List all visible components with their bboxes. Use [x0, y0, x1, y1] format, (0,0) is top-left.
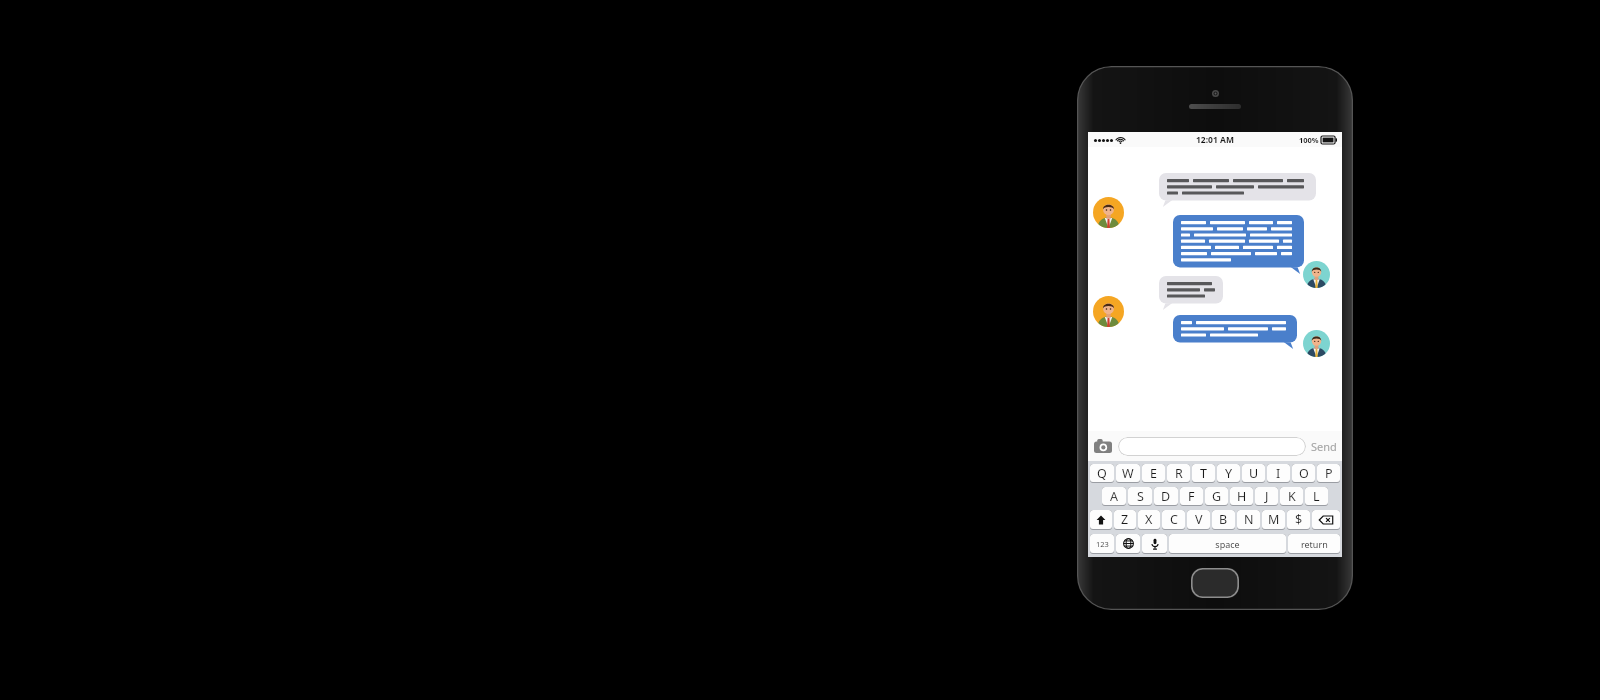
- button[interactable]: Backspace: [1312, 510, 1340, 529]
- button[interactable]: K: [1280, 487, 1303, 505]
- button[interactable]: Change language: [1116, 534, 1140, 553]
- staticText: $: [1295, 511, 1303, 528]
- button[interactable]: $: [1287, 510, 1310, 529]
- staticText: L: [1313, 488, 1320, 505]
- staticText: K: [1288, 488, 1296, 505]
- button[interactable]: A: [1102, 487, 1126, 505]
- button[interactable]: H: [1230, 487, 1253, 505]
- button[interactable]: T: [1192, 464, 1215, 482]
- button[interactable]: 123: [1090, 534, 1114, 553]
- button[interactable]: R: [1167, 464, 1190, 482]
- staticText: I: [1276, 465, 1281, 482]
- button[interactable]: L: [1305, 487, 1328, 505]
- staticText: J: [1265, 488, 1269, 505]
- button[interactable]: P: [1317, 464, 1340, 482]
- staticText: X: [1145, 511, 1153, 528]
- staticText: Y: [1225, 465, 1233, 482]
- staticText: O: [1299, 465, 1309, 482]
- button[interactable]: W: [1116, 464, 1140, 482]
- button[interactable]: Contact avatar: [1093, 197, 1124, 228]
- button[interactable]: M: [1262, 510, 1285, 529]
- button[interactable]: E: [1142, 464, 1165, 482]
- button[interactable]: D: [1154, 487, 1178, 505]
- staticText: E: [1150, 465, 1157, 482]
- staticText: R: [1175, 465, 1183, 482]
- button[interactable]: Home: [1191, 568, 1239, 598]
- staticText: S: [1137, 488, 1144, 505]
- staticText: 12:01 AM: [1196, 134, 1234, 146]
- button[interactable]: B: [1212, 510, 1235, 529]
- staticText: V: [1195, 511, 1203, 528]
- staticText: D: [1161, 488, 1171, 505]
- staticText: space: [1215, 538, 1240, 550]
- button[interactable]: Send: [1311, 439, 1337, 454]
- button[interactable]: Voice input: [1142, 534, 1167, 553]
- staticText: return: [1301, 538, 1328, 550]
- staticText: P: [1325, 465, 1333, 482]
- button[interactable]: [1118, 437, 1306, 456]
- button[interactable]: J: [1255, 487, 1278, 505]
- button[interactable]: O: [1292, 464, 1315, 482]
- staticText: W: [1122, 465, 1134, 482]
- button[interactable]: G: [1205, 487, 1228, 505]
- button[interactable]: Shift: [1090, 510, 1112, 529]
- button[interactable]: Contact avatar: [1303, 330, 1330, 357]
- staticText: U: [1249, 465, 1259, 482]
- staticText: A: [1110, 488, 1118, 505]
- button[interactable]: N: [1237, 510, 1260, 529]
- button[interactable]: C: [1162, 510, 1185, 529]
- staticText: F: [1188, 488, 1195, 505]
- button[interactable]: Y: [1217, 464, 1240, 482]
- button[interactable]: X: [1138, 510, 1160, 529]
- button[interactable]: Z: [1114, 510, 1136, 529]
- staticText: Z: [1121, 511, 1129, 528]
- staticText: B: [1219, 511, 1228, 528]
- button[interactable]: V: [1187, 510, 1210, 529]
- staticText: T: [1200, 465, 1207, 482]
- button[interactable]: F: [1180, 487, 1203, 505]
- staticText: C: [1170, 511, 1178, 528]
- button[interactable]: Contact avatar: [1303, 261, 1330, 288]
- button[interactable]: Camera: [1093, 437, 1113, 455]
- staticText: N: [1244, 511, 1254, 528]
- button[interactable]: Contact avatar: [1093, 296, 1124, 327]
- button[interactable]: I: [1267, 464, 1290, 482]
- staticText: Q: [1097, 465, 1107, 482]
- button[interactable]: Q: [1090, 464, 1114, 482]
- button[interactable]: U: [1242, 464, 1265, 482]
- staticText: M: [1268, 511, 1280, 528]
- staticText: G: [1212, 488, 1222, 505]
- staticText: H: [1237, 488, 1247, 505]
- button[interactable]: S: [1128, 487, 1152, 505]
- staticText: 123: [1096, 539, 1109, 549]
- staticText: Send: [1311, 439, 1337, 454]
- button[interactable]: return: [1288, 534, 1340, 553]
- staticText: 100%: [1299, 135, 1319, 145]
- button[interactable]: space: [1169, 534, 1286, 553]
